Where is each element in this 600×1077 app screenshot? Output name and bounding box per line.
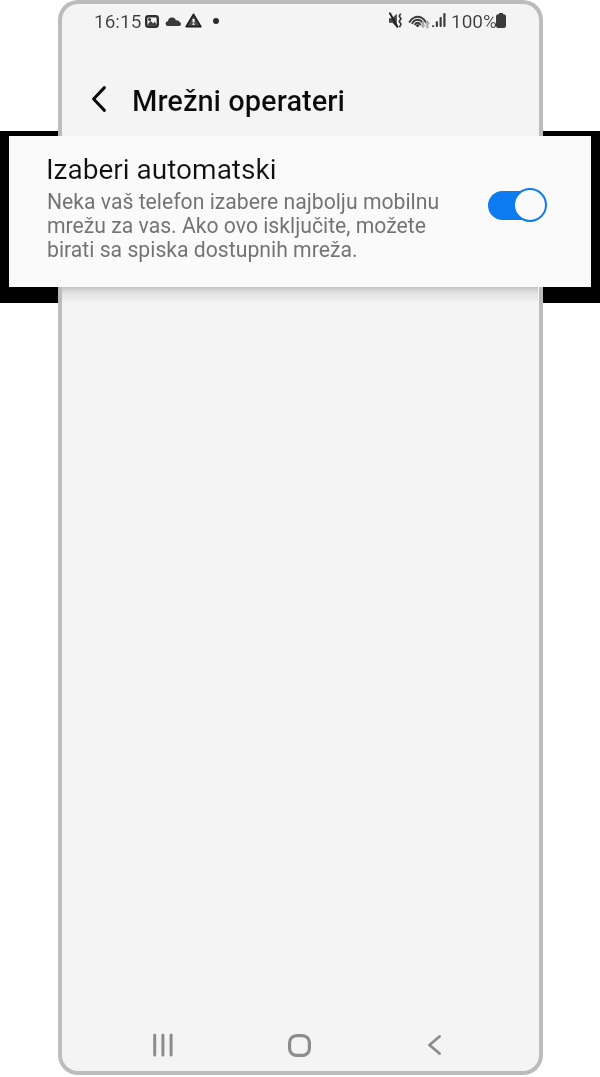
button[interactable]: Back xyxy=(396,1017,473,1073)
button[interactable]: Izaberi automatski xyxy=(9,136,591,287)
staticText: Mrežni operateri xyxy=(132,84,345,118)
staticText: Neka vaš telefon izabere najbolju mobiln… xyxy=(47,189,440,262)
button[interactable]: Recent apps xyxy=(124,1017,201,1073)
button[interactable]: Home xyxy=(261,1017,338,1073)
staticText: Izaberi automatski xyxy=(46,153,277,186)
button[interactable]: Back xyxy=(76,77,121,121)
staticText: 100% xyxy=(451,10,497,32)
staticText: 16:15 xyxy=(94,10,142,32)
